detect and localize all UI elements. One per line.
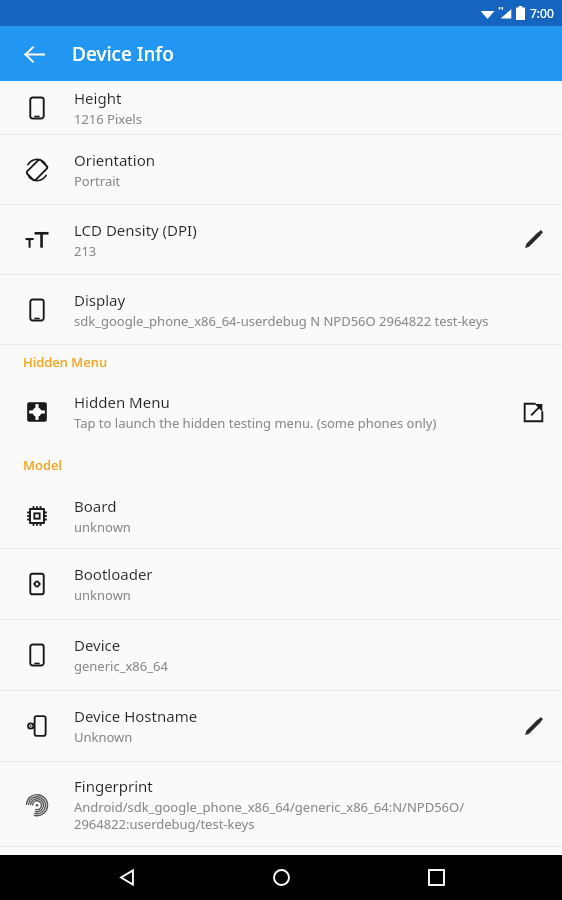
button[interactable]: Fingerprint (0, 762, 562, 846)
staticText: LCD Density (DPI) (74, 220, 197, 240)
button[interactable]: Back (99, 855, 155, 900)
staticText: Model (23, 456, 62, 474)
staticText: 7:00 (530, 5, 554, 21)
button[interactable]: Open hidden menu (504, 378, 562, 446)
staticText: Orientation (74, 150, 155, 170)
staticText: Hidden Menu (23, 353, 108, 371)
button[interactable]: LCD Density (DPI) (0, 205, 562, 274)
staticText: Unknown (74, 728, 133, 746)
staticText: Height (74, 88, 122, 108)
staticText: Hidden Menu (74, 392, 170, 412)
button[interactable]: Edit LCD Density (504, 205, 562, 274)
button[interactable]: Home (253, 855, 309, 900)
staticText: Device (74, 635, 121, 655)
button[interactable]: Back (14, 34, 54, 74)
staticText: Tap to launch the hidden testing menu. (… (74, 414, 437, 432)
button[interactable]: Recent apps (408, 855, 464, 900)
button[interactable]: Orientation (0, 135, 562, 204)
button[interactable]: Board (0, 483, 562, 548)
button[interactable]: Hidden Menu (0, 378, 562, 446)
staticText: 213 (74, 242, 97, 260)
button[interactable]: Display (0, 275, 562, 344)
button[interactable]: Device Hostname (0, 691, 562, 761)
staticText: sdk_google_phone_x86_64-userdebug N NPD5… (74, 312, 489, 330)
button[interactable]: Device (0, 620, 562, 690)
staticText: Board (74, 496, 117, 516)
staticText: unknown (74, 586, 131, 604)
staticText: Fingerprint (74, 776, 153, 796)
staticText: unknown (74, 518, 131, 536)
button[interactable]: Bootloader (0, 549, 562, 619)
staticText: Device Info (72, 41, 174, 67)
staticText: generic_x86_64 (74, 657, 168, 675)
staticText: Display (74, 290, 126, 310)
staticText: Portrait (74, 172, 121, 190)
staticText: 1216 Pixels (74, 110, 142, 128)
staticText: Device Hostname (74, 706, 198, 726)
staticText: Android/sdk_google_phone_x86_64/generic_… (74, 798, 464, 833)
button[interactable]: Height (0, 81, 562, 134)
button[interactable]: Edit Device Hostname (504, 691, 562, 761)
staticText: Bootloader (74, 564, 153, 584)
